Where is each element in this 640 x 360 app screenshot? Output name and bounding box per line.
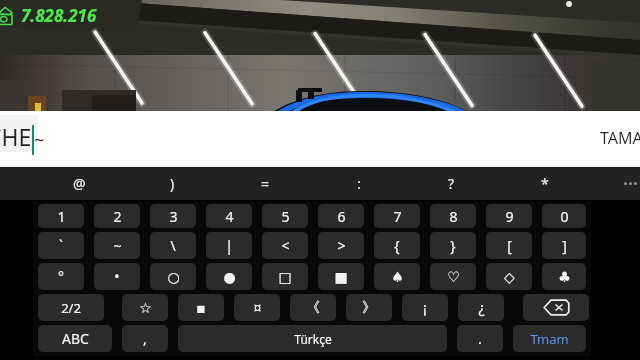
button[interactable]: ■ <box>318 263 364 290</box>
button[interactable]: ♠ <box>374 263 420 290</box>
staticText: ¿ <box>478 298 485 317</box>
button[interactable]: . <box>457 325 503 352</box>
staticText: > <box>337 236 346 255</box>
button[interactable]: 6 <box>318 204 364 228</box>
staticText: 0 <box>560 207 569 226</box>
staticText: ¤ <box>253 298 262 317</box>
staticText: ) <box>170 174 175 193</box>
staticText: 8 <box>449 207 458 226</box>
staticText: ▪ <box>196 300 206 316</box>
button[interactable]: 4 <box>206 204 252 228</box>
button[interactable]: ) <box>126 167 219 200</box>
staticText: 2 <box>113 207 122 226</box>
button[interactable]: Cash balance <box>0 4 97 27</box>
button[interactable]: □ <box>262 263 308 290</box>
staticText: 《 <box>306 299 320 317</box>
staticText: , <box>143 329 147 348</box>
button[interactable]: ♡ <box>430 263 476 290</box>
button[interactable]: 》 <box>346 294 392 321</box>
button[interactable]: ] <box>542 232 586 259</box>
staticText: ABC <box>62 329 89 348</box>
button[interactable]: 7 <box>374 204 420 228</box>
button[interactable]: • <box>94 263 140 290</box>
staticText: @ <box>73 174 86 193</box>
button[interactable]: = <box>219 167 312 200</box>
button[interactable]: \ <box>150 232 196 259</box>
staticText: 5 <box>281 207 290 226</box>
staticText: Tmam <box>530 330 569 348</box>
staticText: ♠ <box>391 269 404 285</box>
staticText: ? <box>448 174 455 193</box>
button[interactable]: 8 <box>430 204 476 228</box>
staticText: ☆ <box>139 300 152 316</box>
staticText: ~ <box>113 236 122 255</box>
button[interactable]: ~ <box>94 232 140 259</box>
button[interactable]: ¡ <box>402 294 448 321</box>
staticText: 》 <box>362 299 376 317</box>
button[interactable]: 3 <box>150 204 196 228</box>
button[interactable]: @ <box>33 167 126 200</box>
button[interactable]: > <box>318 232 364 259</box>
staticText: | <box>225 236 233 255</box>
button[interactable]: 2/2 <box>38 294 104 321</box>
button[interactable]: ◇ <box>486 263 532 290</box>
button[interactable]: ● <box>206 263 252 290</box>
button[interactable]: : <box>312 167 405 200</box>
staticText: = <box>261 174 270 193</box>
staticText: ■ <box>334 269 348 285</box>
button[interactable]: CHE <box>0 111 640 167</box>
staticText: : <box>357 174 361 193</box>
staticText: ♣ <box>558 269 571 285</box>
button[interactable]: } <box>430 232 476 259</box>
button[interactable]: { <box>374 232 420 259</box>
button[interactable]: ` <box>38 232 84 259</box>
staticText: 2/2 <box>61 299 81 317</box>
button[interactable]: ▪ <box>178 294 224 321</box>
button[interactable]: Backspace <box>523 294 589 321</box>
button[interactable]: | <box>206 232 252 259</box>
staticText: □ <box>278 269 292 285</box>
staticText: ¡ <box>423 298 427 317</box>
staticText: 3 <box>169 207 178 226</box>
staticText: 9 <box>505 207 514 226</box>
button[interactable]: TAMAM <box>600 127 640 149</box>
staticText: ● <box>223 269 236 285</box>
button[interactable]: ABC <box>38 325 112 352</box>
staticText: 6 <box>337 207 346 226</box>
staticText: ` <box>59 236 63 255</box>
staticText: } <box>450 236 456 255</box>
button[interactable]: Tmam <box>513 325 586 352</box>
staticText: 7 <box>393 207 402 226</box>
button[interactable]: 《 <box>290 294 336 321</box>
button[interactable]: ¤ <box>234 294 280 321</box>
button[interactable]: Türkçe <box>178 325 447 352</box>
button[interactable]: 0 <box>542 204 586 228</box>
button[interactable]: 1 <box>38 204 84 228</box>
staticText: ~ <box>34 128 45 153</box>
button[interactable]: ☆ <box>122 294 168 321</box>
button[interactable]: ○ <box>150 263 196 290</box>
staticText: < <box>281 236 290 255</box>
staticText: ° <box>58 267 64 286</box>
staticText: . <box>478 329 482 348</box>
button[interactable]: 9 <box>486 204 532 228</box>
button[interactable]: 2 <box>94 204 140 228</box>
button[interactable]: ♣ <box>542 263 586 290</box>
staticText: CHE <box>0 121 32 152</box>
staticText: ◇ <box>504 269 515 285</box>
staticText: { <box>394 236 400 255</box>
button[interactable]: < <box>262 232 308 259</box>
button[interactable]: ° <box>38 263 84 290</box>
button[interactable]: ¿ <box>458 294 504 321</box>
staticText: TAMAM <box>600 127 640 149</box>
button[interactable]: , <box>122 325 168 352</box>
button[interactable]: 5 <box>262 204 308 228</box>
button[interactable]: ? <box>405 167 498 200</box>
staticText: ♡ <box>447 269 460 285</box>
button[interactable]: * <box>498 167 591 200</box>
staticText: ○ <box>167 269 180 285</box>
staticText: \ <box>170 236 176 255</box>
staticText: • <box>114 267 120 286</box>
button[interactable]: More options <box>623 182 638 185</box>
button[interactable]: [ <box>486 232 532 259</box>
